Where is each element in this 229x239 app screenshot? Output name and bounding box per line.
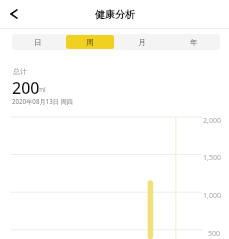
staticText: 年 [190, 38, 198, 47]
staticText: 1,500 [203, 153, 221, 163]
button[interactable]: 周 [66, 35, 114, 49]
staticText: 健康分析 [95, 8, 135, 21]
button[interactable]: 年 [170, 35, 218, 49]
staticText: 200 [12, 77, 40, 99]
staticText: 2,000 [203, 116, 221, 126]
staticText: 总计 [13, 67, 27, 76]
staticText: 周 [86, 38, 94, 47]
button[interactable]: 月 [118, 35, 166, 49]
staticText: ml [38, 85, 46, 94]
staticText: 1,000 [203, 191, 221, 201]
staticText: 500 [208, 229, 221, 239]
staticText: 2020年08月13日 周四 [12, 97, 73, 105]
staticText: 月 [138, 38, 146, 47]
button[interactable]: Back [0, 0, 28, 28]
button[interactable]: 日 [14, 35, 62, 49]
staticText: 日 [34, 38, 42, 47]
